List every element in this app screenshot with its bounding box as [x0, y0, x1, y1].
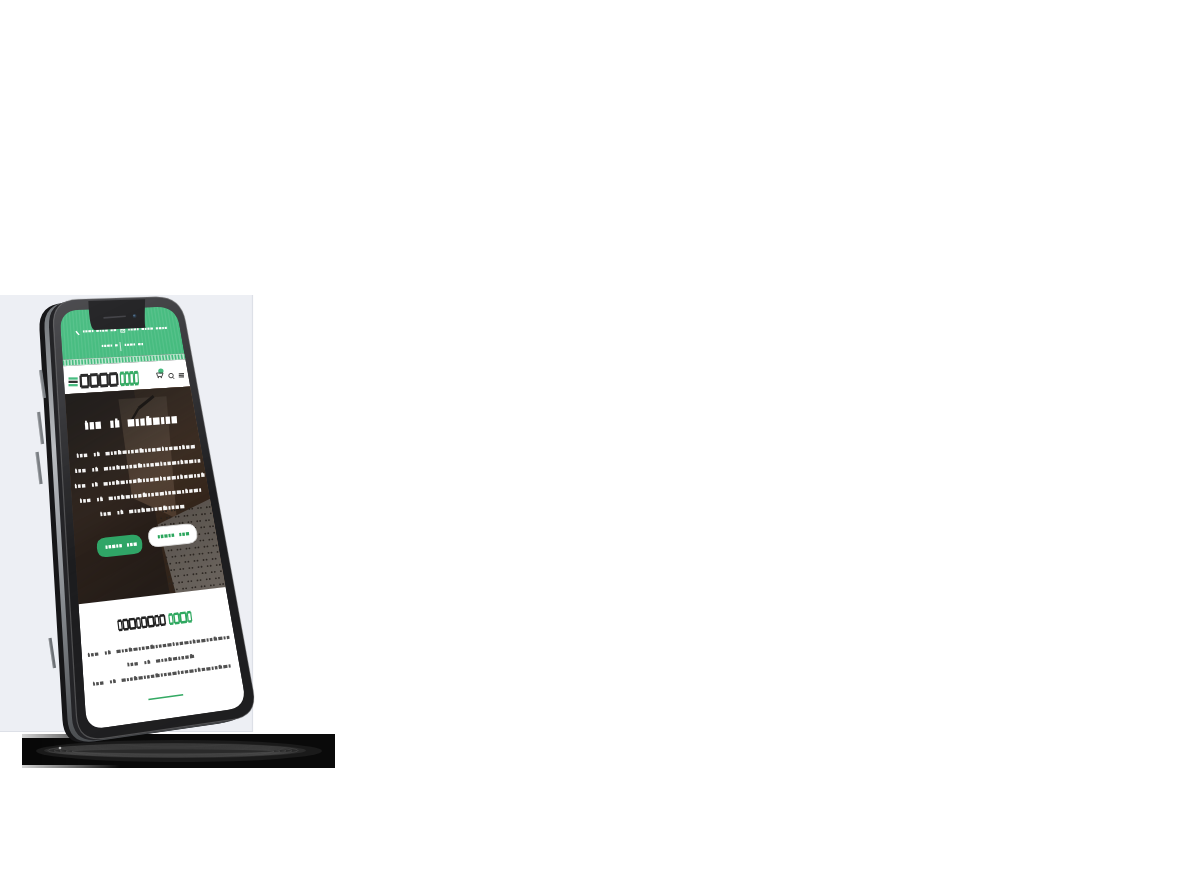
- button[interactable]: About Us: [96, 536, 148, 562]
- button[interactable]: Cart: [144, 355, 158, 373]
- button[interactable]: Menu: [172, 357, 188, 373]
- button[interactable]: Search: [158, 357, 172, 373]
- button[interactable]: Contact Us: [144, 531, 200, 557]
